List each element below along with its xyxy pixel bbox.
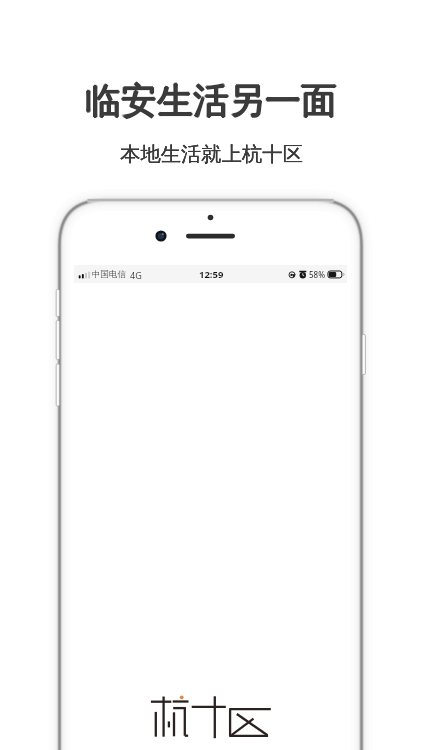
staticText: 临安生活另一面 <box>86 78 338 123</box>
staticText: 临安生活另一面 <box>85 77 337 122</box>
staticText: 58% <box>309 269 325 280</box>
staticText: 临安生活另一面 <box>85 79 337 124</box>
staticText: 4G <box>130 269 142 281</box>
staticText: 本地生活就上杭十区 <box>120 141 303 167</box>
staticText: 本地生活就上杭十区 <box>120 141 303 167</box>
staticText: 临安生活另一面 <box>84 78 336 123</box>
staticText: 12:59 <box>199 268 224 281</box>
staticText: 本地生活就上杭十区 <box>120 141 303 167</box>
staticText: 中国电信 <box>92 269 126 280</box>
button[interactable]: 杭十区 logo <box>150 690 275 742</box>
staticText: 本地生活就上杭十区 <box>120 141 303 167</box>
